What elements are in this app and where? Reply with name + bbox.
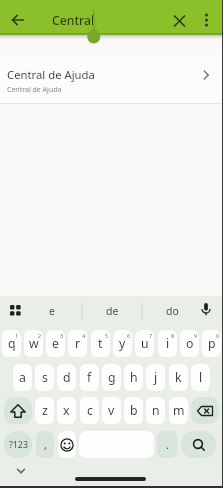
button[interactable]: u [135,330,154,357]
staticText: d [63,369,71,386]
staticText: w [29,335,39,352]
staticText: j [154,369,158,386]
button[interactable] [196,8,217,32]
button[interactable] [4,300,26,322]
button[interactable]: h [124,364,143,391]
staticText: m [173,402,185,419]
button[interactable]: f [80,364,99,391]
staticText: do [166,304,179,318]
button[interactable] [181,431,216,458]
button[interactable] [79,431,154,458]
button[interactable]: d [57,364,76,391]
staticText: 0 [216,332,220,339]
button[interactable] [10,462,34,480]
button[interactable]: , [36,431,54,458]
button[interactable] [6,8,30,32]
staticText: p [208,335,216,352]
staticText: z [42,402,48,419]
staticText: Central [52,12,95,29]
button[interactable]: z [35,397,54,424]
button[interactable]: a [13,364,32,391]
staticText: 2 [38,332,42,339]
button[interactable]: n [146,397,165,424]
staticText: de [106,304,119,318]
staticText: v [108,402,115,419]
staticText: l [199,369,203,386]
staticText: 9 [194,332,198,339]
staticText: u [141,335,149,352]
staticText: 7 [149,332,153,339]
button[interactable] [191,397,219,424]
button[interactable]: r [68,330,87,357]
staticText: y [119,335,126,352]
button[interactable] [4,397,32,424]
staticText: 1 [15,332,19,339]
staticText: c [87,402,93,419]
staticText: h [130,369,138,386]
button[interactable]: de [82,298,142,324]
button[interactable]: x [57,397,76,424]
button[interactable] [167,9,191,33]
staticText: s [42,369,48,386]
staticText: g [108,369,116,386]
button[interactable]: k [169,364,188,391]
button[interactable]: y [113,330,132,357]
staticText: 3 [60,332,64,339]
staticText: n [152,402,160,419]
staticText: x [63,402,70,419]
staticText: 8 [171,332,175,339]
button[interactable] [58,431,76,458]
button[interactable]: b [124,397,143,424]
staticText: , [44,437,47,452]
staticText: b [130,402,138,419]
staticText: f [87,369,92,386]
staticText: e [52,335,59,352]
button[interactable]: t [91,330,110,357]
staticText: ?123 [9,439,28,451]
staticText: t [98,335,103,352]
button[interactable]: o [180,330,199,357]
staticText: i [166,335,170,352]
button[interactable]: e [46,330,65,357]
staticText: q [8,335,16,352]
button[interactable]: w [24,330,43,357]
staticText: a [19,369,26,386]
staticText: o [186,335,194,352]
button[interactable]: i [158,330,177,357]
button[interactable]: e [22,298,82,324]
staticText: Central de Ajuda [7,67,95,82]
staticText: k [175,369,182,386]
staticText: 6 [127,332,131,339]
staticText: 4 [82,332,86,339]
button[interactable]: Central de Ajuda [0,55,223,103]
button[interactable]: q [2,330,21,357]
button[interactable] [195,299,217,323]
button[interactable]: . [157,431,177,458]
staticText: . [166,437,169,452]
button[interactable]: ?123 [4,431,32,458]
staticText: e [49,304,55,318]
button[interactable]: p [202,330,221,357]
button[interactable]: m [169,397,188,424]
button[interactable]: l [191,364,210,391]
button[interactable]: j [146,364,165,391]
staticText: 5 [105,332,109,339]
button[interactable]: g [102,364,121,391]
button[interactable]: do [142,298,202,324]
button[interactable]: s [35,364,54,391]
button[interactable]: c [80,397,99,424]
staticText: r [75,335,81,352]
staticText: Central de Ajuda [7,85,62,95]
button[interactable]: v [102,397,121,424]
